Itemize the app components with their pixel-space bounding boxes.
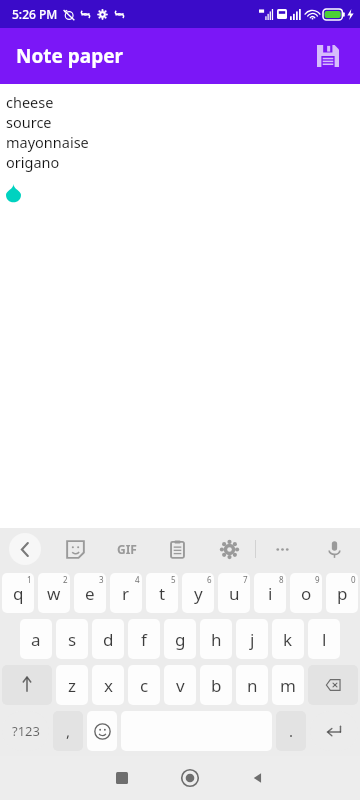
button[interactable]: i	[254, 573, 286, 613]
button[interactable]: q	[2, 573, 34, 613]
button[interactable]: t	[146, 573, 178, 613]
button[interactable]: p	[326, 573, 358, 613]
staticText: j	[250, 628, 255, 651]
button[interactable]: w	[38, 573, 70, 613]
button[interactable]: r	[110, 573, 142, 613]
button[interactable]: Symbols	[2, 711, 49, 751]
staticText: mayonnaise	[6, 132, 89, 152]
button[interactable]: j	[236, 619, 268, 659]
button[interactable]: Voice input	[308, 528, 360, 570]
staticText: k	[283, 628, 293, 651]
staticText: x	[104, 674, 113, 697]
button[interactable]: o	[290, 573, 322, 613]
button[interactable]: Recents	[88, 756, 156, 800]
staticText: 2	[63, 574, 68, 585]
button[interactable]: m	[272, 665, 304, 705]
button[interactable]: v	[164, 665, 196, 705]
staticText: 4	[135, 574, 140, 585]
staticText: w	[47, 582, 61, 605]
staticText: t	[159, 582, 166, 605]
button[interactable]: u	[218, 573, 250, 613]
button[interactable]: f	[128, 619, 160, 659]
staticText: n	[247, 674, 258, 697]
staticText: source	[6, 112, 52, 132]
button[interactable]: x	[92, 665, 124, 705]
staticText: 6	[207, 574, 212, 585]
button[interactable]: z	[56, 665, 88, 705]
button[interactable]: cheese	[0, 84, 360, 528]
button[interactable]: c	[128, 665, 160, 705]
button[interactable]: Settings	[203, 528, 255, 570]
staticText: cheese	[6, 92, 54, 112]
button[interactable]: Back	[0, 528, 50, 570]
staticText: m	[280, 674, 296, 697]
button[interactable]: k	[272, 619, 304, 659]
button[interactable]: Enter	[310, 711, 358, 751]
staticText: 9	[315, 574, 320, 585]
staticText: b	[211, 674, 222, 697]
button[interactable]: Comma	[53, 711, 83, 751]
button[interactable]: Emoji	[87, 711, 117, 751]
staticText: c	[140, 674, 149, 697]
button[interactable]: Shift	[2, 665, 52, 705]
button[interactable]: Clipboard	[152, 528, 203, 570]
button[interactable]: Home	[156, 756, 224, 800]
staticText: 1	[27, 574, 32, 585]
staticText: 8	[279, 574, 284, 585]
staticText: r	[122, 582, 130, 605]
staticText: .	[289, 721, 294, 741]
staticText: h	[211, 628, 222, 651]
staticText: f	[141, 628, 147, 651]
button[interactable]: h	[200, 619, 232, 659]
staticText: p	[337, 582, 348, 605]
staticText: GIF	[117, 541, 137, 557]
staticText: Note paper	[16, 43, 124, 69]
staticText: z	[68, 674, 76, 697]
staticText: g	[175, 628, 186, 651]
staticText: ?123	[12, 722, 40, 740]
button[interactable]: Save	[306, 34, 350, 78]
button[interactable]: Backspace	[308, 665, 358, 705]
button[interactable]: Stickers	[50, 528, 101, 570]
button[interactable]: GIF	[101, 528, 152, 570]
button[interactable]: a	[20, 619, 52, 659]
staticText: a	[31, 628, 41, 651]
staticText: 0	[351, 574, 356, 585]
staticText: s	[68, 628, 77, 651]
staticText: q	[13, 582, 24, 605]
staticText: o	[301, 582, 312, 605]
staticText: origano	[6, 152, 60, 172]
staticText: v	[176, 674, 185, 697]
staticText: ,	[66, 721, 71, 741]
button[interactable]: l	[308, 619, 340, 659]
staticText: l	[322, 628, 327, 651]
button[interactable]: e	[74, 573, 106, 613]
staticText: d	[103, 628, 114, 651]
staticText: 7	[243, 574, 248, 585]
staticText: i	[268, 582, 273, 605]
button[interactable]: s	[56, 619, 88, 659]
button[interactable]: d	[92, 619, 124, 659]
staticText: y	[194, 582, 203, 605]
staticText: u	[229, 582, 240, 605]
button[interactable]: More options	[256, 528, 308, 570]
button[interactable]: y	[182, 573, 214, 613]
staticText: 5:26 PM	[12, 6, 58, 22]
button[interactable]: n	[236, 665, 268, 705]
staticText: e	[85, 582, 95, 605]
button[interactable]: Period	[276, 711, 306, 751]
staticText: 3	[99, 574, 104, 585]
button[interactable]: g	[164, 619, 196, 659]
staticText: 5	[171, 574, 176, 585]
button[interactable]: b	[200, 665, 232, 705]
button[interactable]: Back	[224, 756, 292, 800]
